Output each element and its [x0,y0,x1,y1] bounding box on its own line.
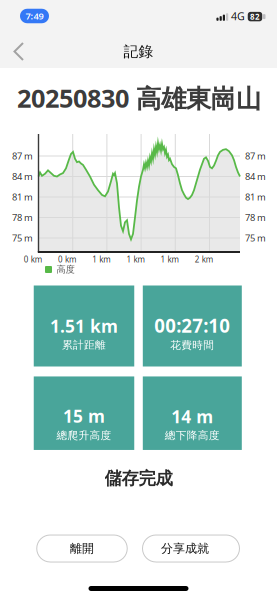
staticText: 15 m [63,404,105,427]
staticText: 84 m [245,170,266,183]
staticText: 高度 [56,264,74,275]
staticText: 14 m [171,405,213,428]
staticText: 0 km [58,254,76,265]
staticText: 82 [250,11,260,22]
staticText: 87 m [12,150,33,162]
staticText: 81 m [245,191,266,203]
staticText: 00:27:10 [154,313,230,338]
staticText: 花費時間 [170,339,214,352]
staticText: 0 km [24,254,42,265]
staticText: 1.51 km [50,314,118,337]
staticText: 87 m [245,150,266,162]
staticText: 離開 [70,541,94,556]
staticText: 20250830 高雄東崗山 [17,81,261,115]
staticText: 75 m [245,232,266,244]
staticText: 總爬升高度 [56,429,111,442]
staticText: 累計距離 [62,338,106,351]
button[interactable]: 離開 [37,535,127,562]
staticText: 1 km [92,254,110,265]
staticText: 7:49 [25,10,43,22]
staticText: 78 m [245,211,266,224]
staticText: 記錄 [123,42,153,60]
staticText: 4G [231,9,245,23]
staticText: 2 km [195,254,213,265]
staticText: 1 km [161,254,179,265]
button[interactable]: 分享成就 [142,535,239,562]
staticText: 78 m [12,211,33,224]
staticText: 儲存完成 [104,468,172,489]
staticText: 總下降高度 [165,429,220,442]
staticText: 81 m [12,191,33,203]
button[interactable] [9,39,29,63]
staticText: 84 m [12,170,33,183]
staticText: 1 km [126,254,144,265]
staticText: 分享成就 [161,541,209,556]
button[interactable]: 7:49 [20,9,49,23]
staticText: 75 m [12,232,33,244]
